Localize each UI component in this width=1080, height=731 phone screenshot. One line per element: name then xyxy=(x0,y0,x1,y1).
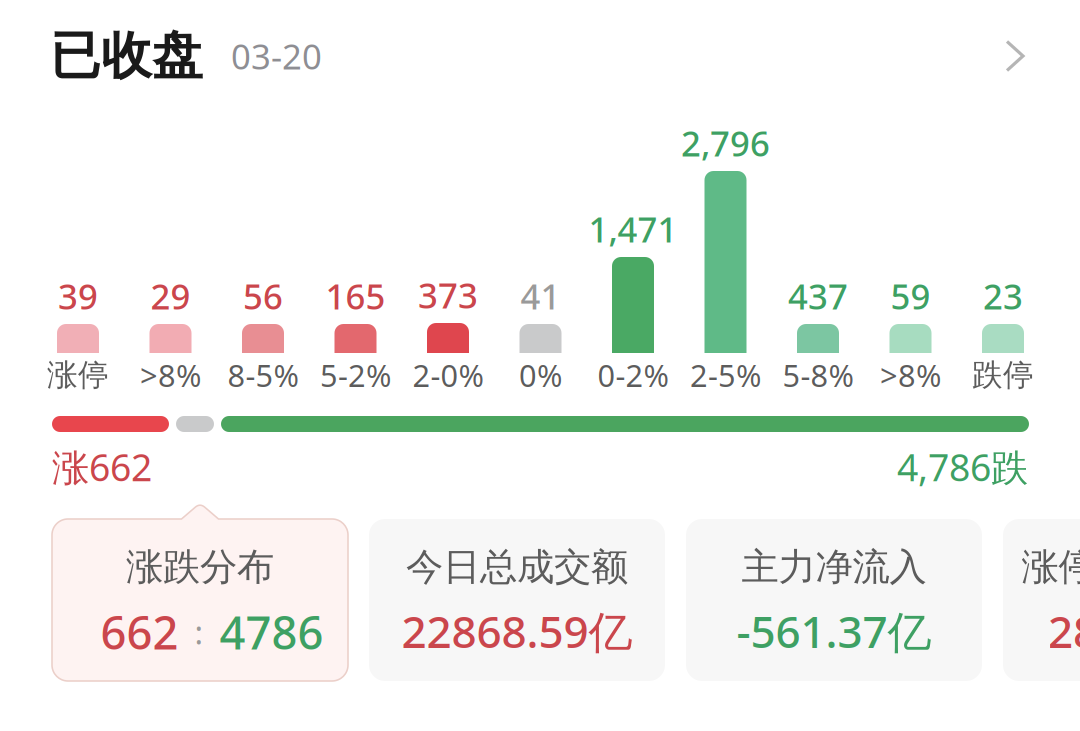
staticText: 1,471 xyxy=(588,206,677,252)
staticText: 涨跌分布 xyxy=(126,544,274,590)
staticText: 41 xyxy=(520,273,560,319)
staticText: 涨662 xyxy=(52,442,152,492)
button[interactable]: 已收盘 xyxy=(50,28,1026,84)
staticText: 8-5% xyxy=(227,355,298,395)
staticText: : xyxy=(178,611,219,653)
staticText: 5-2% xyxy=(320,355,391,395)
button[interactable]: 今日总成交额 xyxy=(369,519,665,681)
staticText: 29 xyxy=(150,273,190,319)
staticText: -561.37亿 xyxy=(736,602,931,660)
staticText: 59 xyxy=(890,273,930,319)
staticText: 4,786跌 xyxy=(897,442,1028,492)
staticText: 0% xyxy=(519,355,562,395)
staticText: 4786 xyxy=(219,602,323,662)
staticText: 56 xyxy=(243,273,283,319)
staticText: 662 xyxy=(100,602,178,662)
staticText: 03-20 xyxy=(231,33,322,79)
staticText: 已收盘 xyxy=(50,25,203,87)
staticText: 23 xyxy=(983,273,1023,319)
button[interactable]: 涨停板成交总额 xyxy=(1003,519,1080,681)
staticText: 2-0% xyxy=(412,355,483,395)
button[interactable]: 主力净流入 xyxy=(686,519,982,681)
staticText: 373 xyxy=(418,272,478,318)
staticText: 2-5% xyxy=(690,355,761,395)
staticText: 22868.59亿 xyxy=(401,602,632,660)
staticText: 39 xyxy=(58,273,98,319)
button[interactable]: 涨跌分布 xyxy=(52,503,348,681)
staticText: 主力净流入 xyxy=(741,544,926,590)
staticText: 0-2% xyxy=(597,355,668,395)
staticText: >8% xyxy=(880,355,941,395)
staticText: 2,796 xyxy=(681,120,770,166)
staticText: 2856.23亿 xyxy=(1048,602,1080,660)
staticText: 涨停板成交总额 xyxy=(1021,544,1080,590)
staticText: 5-8% xyxy=(782,355,853,395)
staticText: 今日总成交额 xyxy=(406,544,628,590)
staticText: 涨停 xyxy=(47,356,109,394)
staticText: 165 xyxy=(325,273,385,319)
staticText: >8% xyxy=(140,355,201,395)
staticText: 437 xyxy=(788,273,848,319)
staticText: 跌停 xyxy=(972,356,1034,394)
